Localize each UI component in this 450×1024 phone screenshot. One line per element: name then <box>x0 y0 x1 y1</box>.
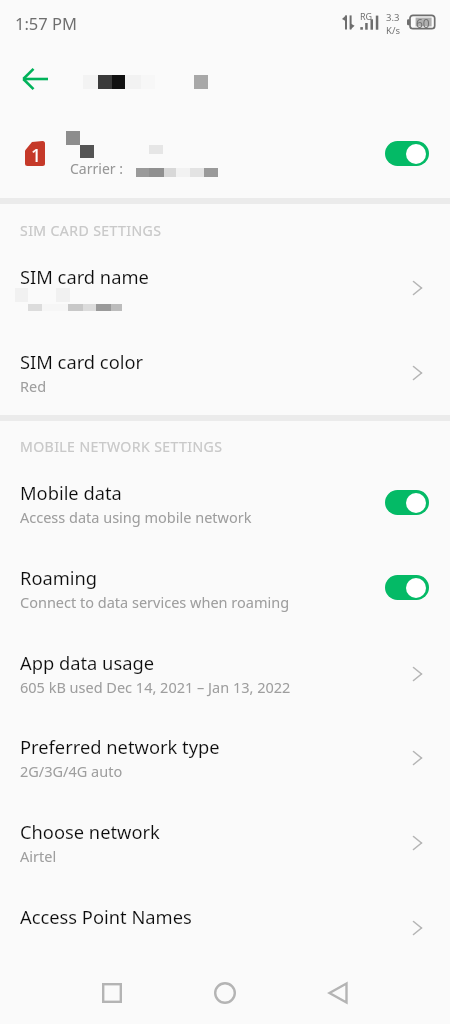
staticText: SIM CARD SETTINGS <box>20 221 162 240</box>
button[interactable]: Roaming <box>0 560 450 640</box>
button[interactable]: Back <box>314 969 362 1017</box>
button[interactable]: SIM card color <box>0 344 450 424</box>
button[interactable]: SIM card name <box>0 259 450 339</box>
button[interactable]: 1 <box>0 110 450 198</box>
staticText: MOBILE NETWORK SETTINGS <box>20 437 223 456</box>
button[interactable]: Mobile data <box>0 475 450 555</box>
button[interactable]: Toggle <box>385 490 429 515</box>
staticText: App data usage <box>20 650 155 675</box>
staticText: Carrier : <box>70 159 123 178</box>
button[interactable]: Preferred network type <box>0 729 450 809</box>
button[interactable]: Recents <box>88 969 136 1017</box>
button[interactable]: Back <box>11 55 59 103</box>
staticText: Preferred network type <box>20 734 220 759</box>
staticText: SIM card color <box>20 349 144 374</box>
staticText: Connect to data services when roaming <box>20 592 290 612</box>
staticText: 605 kB used Dec 14, 2021 – Jan 13, 2022 <box>20 677 291 697</box>
button[interactable]: Toggle <box>385 575 429 600</box>
staticText: Mobile data <box>20 480 122 505</box>
staticText: SIM card name <box>20 264 149 289</box>
button[interactable]: Access Point Names <box>0 899 450 979</box>
button[interactable]: App data usage <box>0 645 450 725</box>
staticText: Access Point Names <box>20 904 192 929</box>
staticText: Red <box>20 376 47 396</box>
staticText: 3.3 <box>386 11 400 24</box>
staticText: 1 <box>31 143 42 168</box>
staticText: Airtel <box>20 846 57 866</box>
staticText: 60 <box>416 15 430 31</box>
button[interactable]: Toggle <box>385 141 429 166</box>
staticText: K/s <box>386 24 400 37</box>
staticText: 2G/3G/4G auto <box>20 761 123 781</box>
button[interactable]: Choose network <box>0 814 450 894</box>
staticText: Access data using mobile network <box>20 507 252 527</box>
staticText: RG <box>360 10 373 22</box>
staticText: Choose network <box>20 819 160 844</box>
staticText: Roaming <box>20 565 98 590</box>
staticText: 1:57 PM <box>15 12 77 34</box>
button[interactable]: Home <box>201 969 249 1017</box>
